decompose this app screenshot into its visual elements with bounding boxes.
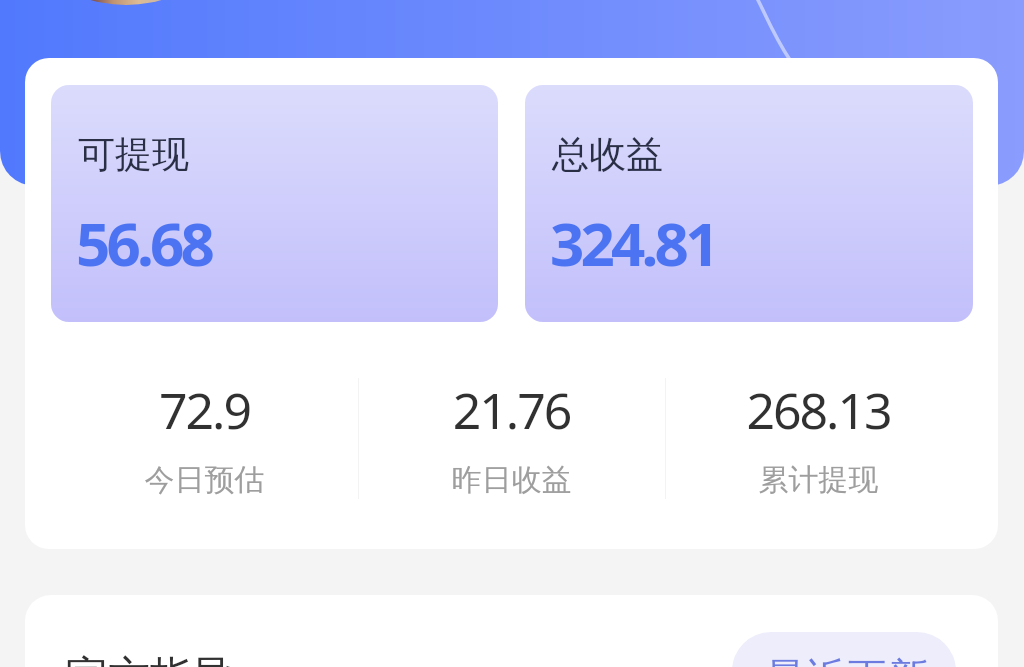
staticText: 72.9: [51, 376, 358, 444]
staticText: 今日预估: [51, 461, 358, 499]
staticText: 可提现: [78, 131, 189, 178]
staticText: 官方指导: [66, 651, 234, 667]
button[interactable]: 总收益: [525, 85, 973, 322]
staticText: 56.68: [76, 202, 212, 284]
button[interactable]: 268.13: [665, 358, 972, 549]
staticText: 21.76: [358, 376, 665, 444]
button[interactable]: Profile avatar: [86, 0, 166, 10]
staticText: 268.13: [665, 376, 972, 444]
button[interactable]: 最近更新: [732, 632, 956, 667]
staticText: 324.81: [550, 202, 716, 284]
staticText: 昨日收益: [358, 461, 665, 499]
staticText: 最近更新: [765, 653, 929, 667]
button[interactable]: 21.76: [358, 358, 665, 549]
button[interactable]: 可提现: [51, 85, 498, 322]
staticText: 累计提现: [665, 461, 972, 499]
button[interactable]: 72.9: [51, 358, 358, 549]
staticText: 总收益: [552, 131, 663, 178]
